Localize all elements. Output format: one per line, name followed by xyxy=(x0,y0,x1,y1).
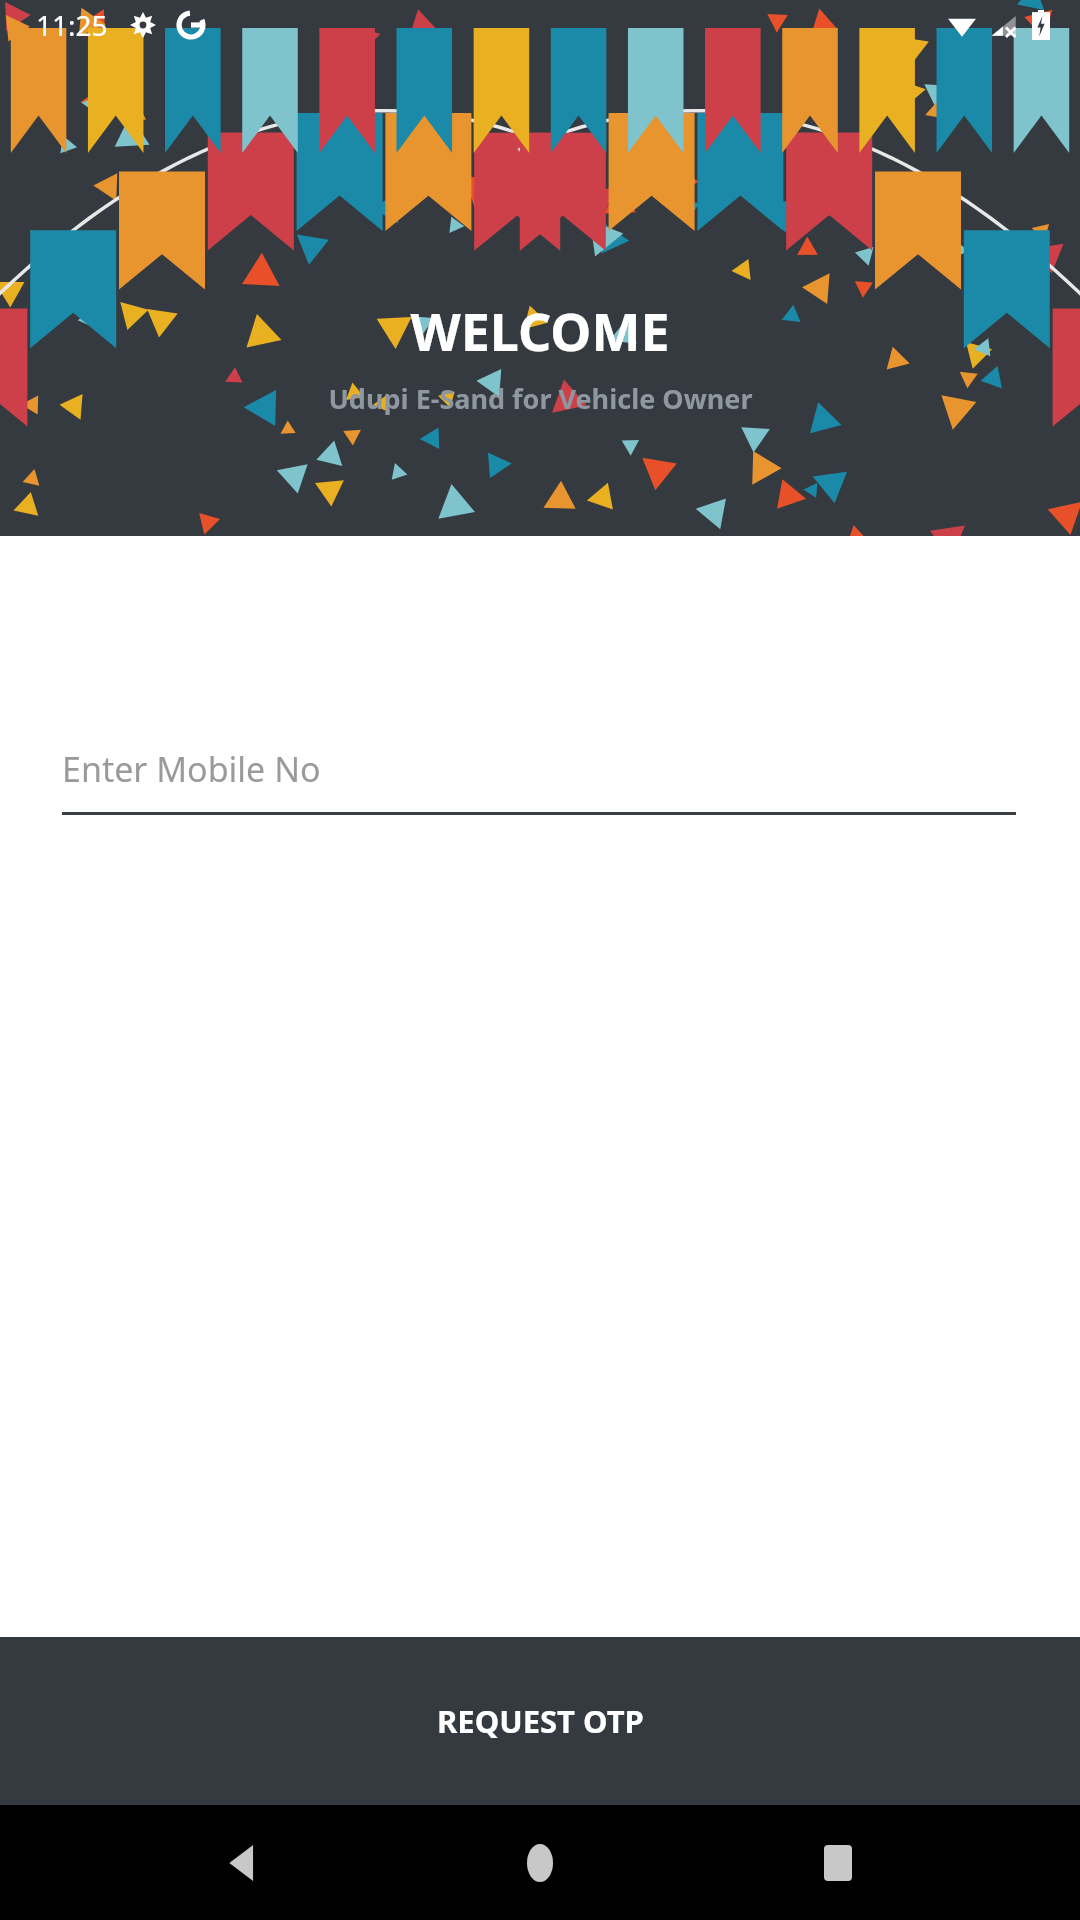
staticText: Enter Mobile No xyxy=(62,746,321,792)
button[interactable]: REQUEST OTP xyxy=(0,1637,1080,1805)
button[interactable]: Home xyxy=(485,1808,595,1918)
staticText: REQUEST OTP xyxy=(437,1700,644,1742)
button[interactable]: Back xyxy=(188,1808,298,1918)
staticText: 11:25 xyxy=(36,6,108,44)
staticText: Udupi E-Sand for Vehicle Owner xyxy=(328,380,753,417)
button[interactable]: Recent apps xyxy=(783,1808,893,1918)
staticText: WELCOME xyxy=(410,295,670,366)
button[interactable]: Enter Mobile No xyxy=(62,726,1016,812)
